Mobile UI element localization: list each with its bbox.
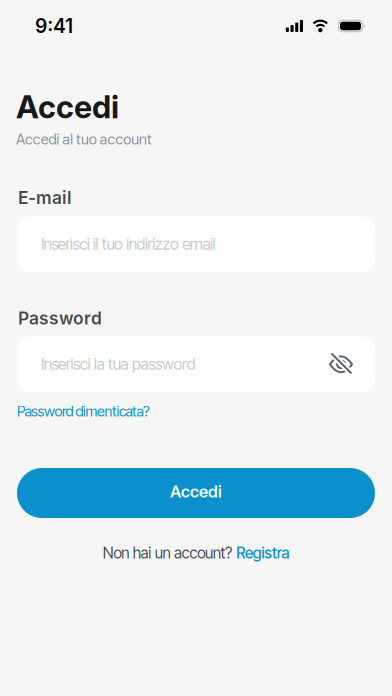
staticText: E-mail bbox=[18, 187, 72, 208]
staticText: Password bbox=[18, 308, 102, 329]
staticText: Inserisci la tua password bbox=[41, 355, 196, 374]
staticText: Accedi bbox=[170, 482, 222, 501]
staticText: Accedi al tuo account bbox=[16, 130, 152, 148]
staticText: 9:41 bbox=[35, 14, 73, 38]
staticText: Non hai un account? bbox=[103, 543, 232, 562]
staticText: Registra bbox=[236, 543, 289, 562]
staticText: Inserisci il tuo indirizzo email bbox=[41, 235, 216, 254]
staticText: Accedi bbox=[16, 88, 119, 126]
staticText: Password dimenticata? bbox=[17, 403, 150, 420]
